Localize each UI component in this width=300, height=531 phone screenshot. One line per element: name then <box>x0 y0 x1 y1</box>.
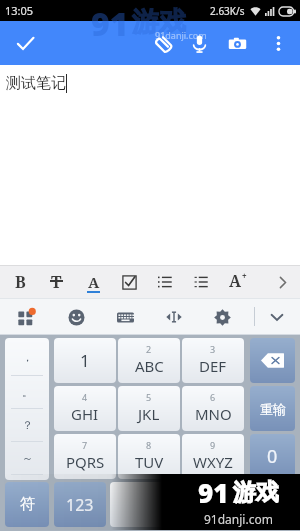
staticText: DEF <box>199 356 227 376</box>
button[interactable]: 2 ABC <box>118 338 180 383</box>
button[interactable]: Voice input <box>182 26 216 60</box>
staticText: 2 <box>146 343 152 355</box>
staticText: 4 <box>82 391 88 403</box>
staticText: B <box>15 271 26 293</box>
staticText: A <box>88 272 100 292</box>
staticText: 123 <box>66 494 94 516</box>
button[interactable]: Settings <box>204 299 240 335</box>
staticText: JKL <box>138 404 160 424</box>
button[interactable]: 123 <box>54 482 106 527</box>
button[interactable]: Font size <box>222 266 254 298</box>
staticText: 测试笔记 <box>6 74 66 93</box>
staticText: 9 <box>210 439 216 451</box>
staticText: 91danji.com <box>155 29 207 41</box>
staticText: 1 <box>80 349 90 372</box>
button[interactable]: 3 DEF <box>182 338 244 383</box>
staticText: A <box>229 270 242 292</box>
button[interactable]: 重输 <box>250 386 295 431</box>
staticText: + <box>242 270 247 281</box>
button[interactable]: Keyboard layout <box>107 299 143 335</box>
button[interactable]: Attach <box>147 26 181 60</box>
staticText: ～ <box>22 451 33 465</box>
staticText: 游戏 <box>132 5 186 39</box>
staticText: 0 <box>267 444 278 469</box>
button[interactable]: 6 MNO <box>182 386 244 431</box>
staticText: 游戏 <box>233 478 279 507</box>
button[interactable]: 1 <box>54 338 116 383</box>
button[interactable]: Backspace <box>250 338 295 383</box>
button[interactable]: Tools <box>8 299 44 335</box>
staticText: 5 <box>146 391 152 403</box>
staticText: MNO <box>195 404 232 424</box>
button[interactable]: Bold <box>4 266 36 298</box>
button[interactable]: Done <box>10 28 40 58</box>
staticText: T <box>51 271 62 293</box>
button[interactable]: 0 <box>250 434 295 479</box>
staticText: ， <box>22 350 33 364</box>
staticText: 3 <box>210 343 216 355</box>
staticText: 91danji.com <box>204 511 273 527</box>
button[interactable]: 9 WXYZ <box>182 434 244 479</box>
staticText: 重输 <box>260 401 286 417</box>
button[interactable]: Underline <box>77 266 109 298</box>
button[interactable]: Space <box>110 482 295 527</box>
button[interactable]: 8 TUV <box>118 434 180 479</box>
button[interactable]: Camera <box>220 26 254 60</box>
button[interactable]: Emoji <box>58 299 94 335</box>
staticText: 91 <box>91 2 129 42</box>
button[interactable]: Bullet list <box>149 266 181 298</box>
staticText: GHI <box>71 404 99 424</box>
staticText: TUV <box>135 452 164 472</box>
staticText: 13:05 <box>5 3 34 18</box>
staticText: 8 <box>146 439 152 451</box>
button[interactable]: Hide keyboard <box>259 299 295 335</box>
button[interactable]: Move cursor <box>156 299 192 335</box>
staticText: 7 <box>82 439 88 451</box>
staticText: ？ <box>22 418 33 432</box>
staticText: 2.63K/s <box>210 4 245 18</box>
button[interactable]: 符 <box>5 482 49 527</box>
staticText: WXYZ <box>193 452 233 472</box>
staticText: 6 <box>210 391 216 403</box>
staticText: ABC <box>135 356 164 376</box>
button[interactable]: More options <box>261 26 295 60</box>
staticText: 91 <box>198 475 229 510</box>
button[interactable]: 4 GHI <box>54 386 116 431</box>
button[interactable]: More formatting <box>266 266 298 298</box>
button[interactable]: Checklist <box>113 266 145 298</box>
staticText: 符 <box>20 495 35 514</box>
button[interactable]: 7 PQRS <box>54 434 116 479</box>
staticText: 。 <box>22 385 33 399</box>
button[interactable]: Punctuation <box>5 338 49 480</box>
staticText: PQRS <box>66 452 105 472</box>
button[interactable]: Strikethrough <box>40 266 72 298</box>
button[interactable]: 5 JKL <box>118 386 180 431</box>
button[interactable]: Numbered list <box>185 266 217 298</box>
